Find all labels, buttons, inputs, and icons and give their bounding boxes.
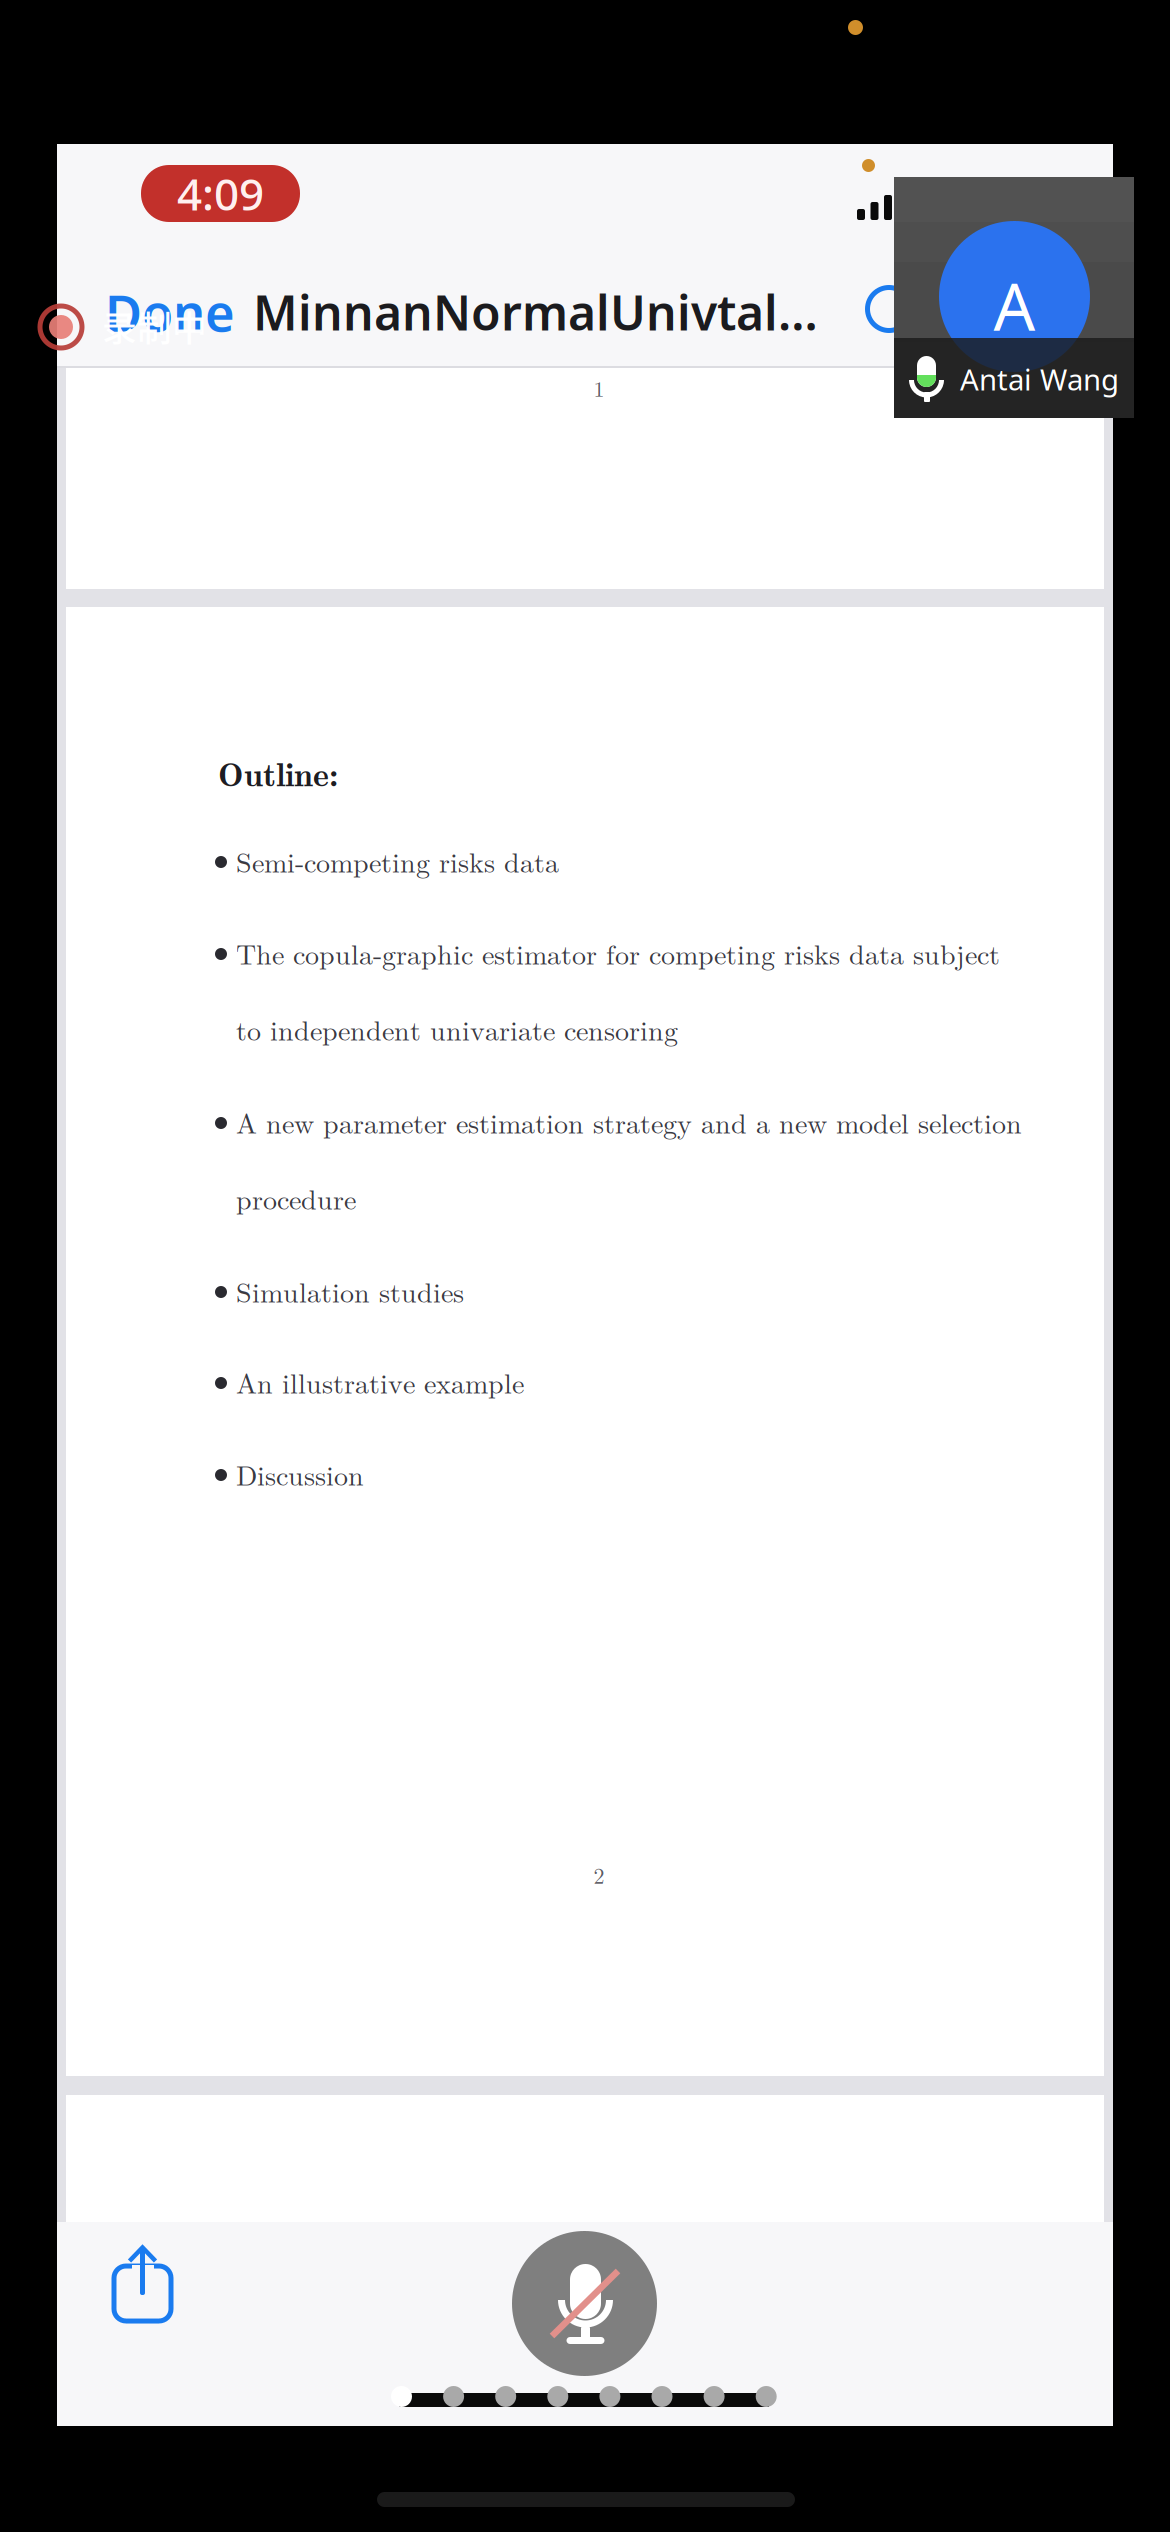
staticText: Discussion <box>236 1463 364 1491</box>
staticText: Simulation studies <box>236 1280 464 1308</box>
button[interactable]: Done <box>105 240 245 384</box>
button[interactable]: Unmute <box>512 2231 657 2376</box>
staticText: A <box>993 262 1035 349</box>
staticText: 录制中 <box>102 301 207 352</box>
staticText: 2 <box>593 1866 604 1888</box>
staticText: MinnanNormalUnivtal… <box>253 280 818 344</box>
staticText: The copula-graphic estimator for competi… <box>236 942 1000 970</box>
staticText: An illustrative example <box>236 1371 524 1399</box>
button[interactable]: Share <box>114 2246 174 2326</box>
staticText: A new parameter estimation strategy and … <box>236 1111 1022 1139</box>
staticText: Outline: <box>218 748 338 796</box>
button[interactable]: More options <box>846 266 932 352</box>
staticText: 4:09 <box>177 164 264 223</box>
staticText: Done <box>105 278 235 346</box>
staticText: Antai Wang <box>960 359 1119 398</box>
staticText: 1 <box>593 379 604 401</box>
staticText: procedure <box>236 1187 356 1215</box>
staticText: to independent univariate censoring <box>236 1018 678 1046</box>
staticText: Semi-competing risks data <box>236 850 559 878</box>
